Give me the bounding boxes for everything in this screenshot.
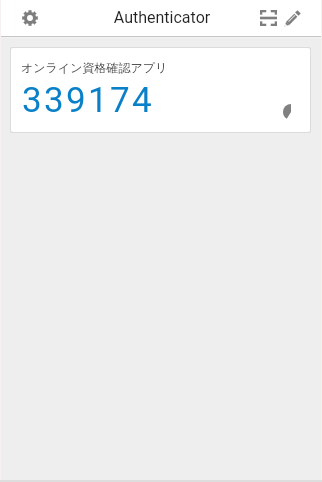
staticText: Authenticator: [1, 8, 322, 27]
button[interactable]: オンライン資格確認アプリ: [11, 48, 310, 132]
button[interactable]: Settings: [11, 0, 47, 36]
other: Time remaining: [283, 104, 299, 120]
staticText: オンライン資格確認アプリ: [21, 60, 168, 75]
button[interactable]: Scan a QR code: [250, 0, 286, 36]
staticText: 339174: [22, 80, 155, 121]
button[interactable]: Edit accounts: [274, 0, 310, 36]
